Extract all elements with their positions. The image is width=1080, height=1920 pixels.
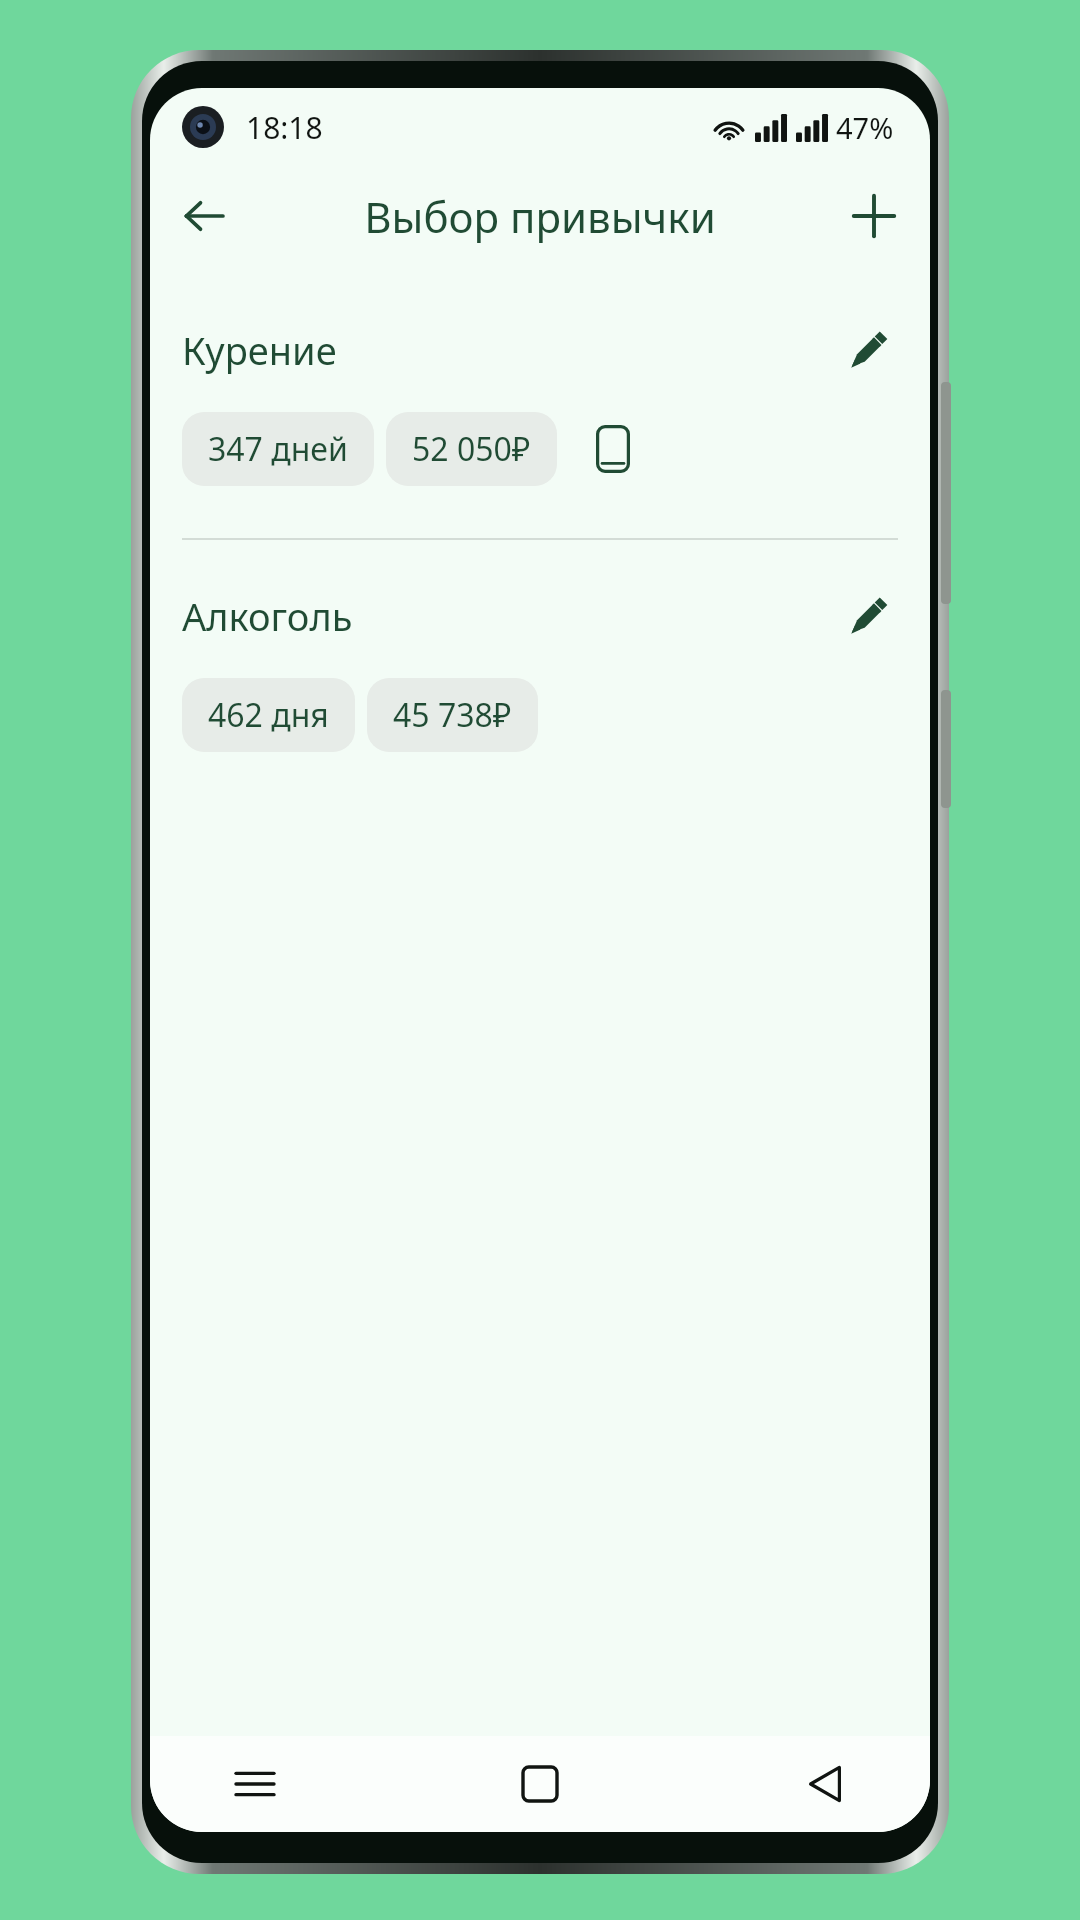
staticText: 462 дня: [208, 693, 329, 737]
button[interactable]: 347 дней: [182, 412, 374, 486]
staticText: Выбор привычки: [364, 188, 716, 245]
button[interactable]: 45 738₽: [367, 678, 538, 752]
button[interactable]: Edit Курение: [832, 314, 904, 386]
button[interactable]: 462 дня: [182, 678, 355, 752]
button[interactable]: Add habit: [832, 174, 916, 258]
button[interactable]: Phone: [583, 419, 643, 479]
button[interactable]: Recent apps: [210, 1739, 300, 1829]
staticText: 47%: [836, 108, 894, 147]
staticText: 18:18: [246, 107, 323, 148]
button[interactable]: 52 050₽: [386, 412, 557, 486]
button[interactable]: Back: [162, 174, 246, 258]
staticText: Курение: [182, 324, 832, 376]
button[interactable]: Home: [495, 1739, 585, 1829]
staticText: Алкоголь: [182, 590, 832, 642]
staticText: 45 738₽: [393, 693, 512, 737]
staticText: 52 050₽: [412, 427, 531, 471]
button[interactable]: Edit Алкоголь: [832, 580, 904, 652]
staticText: 347 дней: [208, 427, 348, 471]
button[interactable]: Back: [780, 1739, 870, 1829]
